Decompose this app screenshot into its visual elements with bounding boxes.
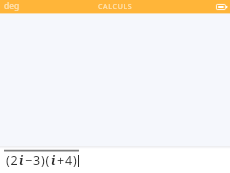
button[interactable]: (2 (0, 146, 230, 173)
staticText: i (19, 152, 25, 169)
staticText: deg (4, 0, 20, 12)
staticText: −3)( (25, 152, 51, 169)
staticText: CALCULS (98, 2, 133, 12)
other: Battery level (216, 4, 228, 10)
button[interactable]: deg (0, 1, 23, 13)
staticText: +4) (57, 152, 78, 169)
staticText: i (51, 152, 57, 169)
staticText: (2 (6, 152, 19, 169)
